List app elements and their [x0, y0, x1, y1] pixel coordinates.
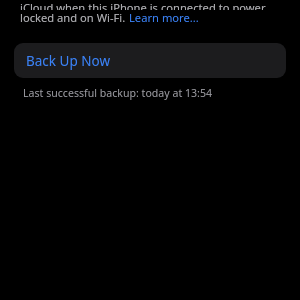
button[interactable]: Back Up Now [14, 43, 286, 78]
staticText: iCloud when this iPhone is connected to … [20, 0, 267, 10]
staticText: Learn more... [129, 10, 199, 22]
staticText: locked and on Wi-Fi. [20, 10, 129, 22]
staticText: Last successful backup: today at 13:54 [23, 86, 213, 100]
button[interactable]: Learn more... [129, 10, 199, 22]
staticText: Back Up Now [26, 52, 110, 70]
